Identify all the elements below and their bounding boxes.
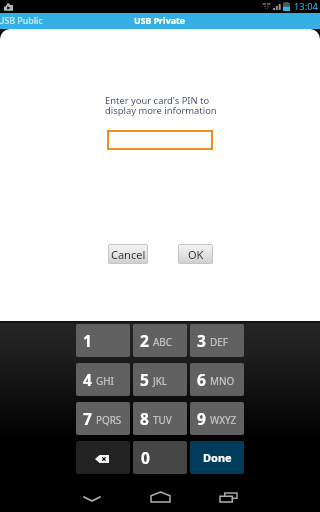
button[interactable]: Back (75, 482, 109, 512)
button[interactable]: Recents (211, 480, 245, 512)
staticText: PQRS (96, 413, 122, 426)
button[interactable]: OK (178, 244, 213, 264)
staticText: 0 (141, 447, 150, 468)
button[interactable]: 3 (190, 324, 244, 357)
staticText: ABC (153, 335, 172, 348)
staticText: USB Private (134, 15, 186, 27)
button[interactable]: Backspace (76, 441, 130, 474)
staticText: MNO (210, 374, 235, 387)
staticText: 6 (197, 369, 206, 390)
staticText: 4 (83, 369, 92, 390)
staticText: Done (203, 450, 232, 465)
staticText: Enter your card's PIN to display more in… (105, 94, 217, 117)
staticText: 8 (140, 408, 149, 429)
button[interactable]: 7 (76, 402, 130, 435)
button[interactable]: Cancel (108, 244, 148, 264)
button[interactable]: 1 (76, 324, 130, 357)
button[interactable]: 6 (190, 363, 244, 396)
staticText: GHI (96, 374, 114, 387)
staticText: USB Public (0, 15, 43, 27)
button[interactable]: 0 (133, 441, 187, 474)
staticText: 5 (140, 369, 149, 390)
button[interactable] (107, 130, 213, 150)
staticText: 13:04 (294, 0, 318, 13)
button[interactable]: Home (143, 480, 177, 512)
staticText: 1 (83, 330, 92, 351)
button[interactable]: 8 (133, 402, 187, 435)
staticText: OK (188, 247, 204, 262)
staticText: TUV (153, 413, 172, 426)
staticText: 3 (197, 330, 206, 351)
button[interactable]: 2 (133, 324, 187, 357)
staticText: 7 (83, 408, 92, 429)
staticText: JKL (153, 374, 168, 387)
staticText: DEF (210, 335, 228, 348)
staticText: 2 (140, 330, 149, 351)
staticText: Cancel (111, 247, 146, 262)
staticText: WXYZ (210, 413, 237, 426)
button[interactable]: 4 (76, 363, 130, 396)
button[interactable]: 5 (133, 363, 187, 396)
button[interactable]: Done (190, 441, 244, 474)
button[interactable]: 9 (190, 402, 244, 435)
staticText: 9 (197, 408, 206, 429)
